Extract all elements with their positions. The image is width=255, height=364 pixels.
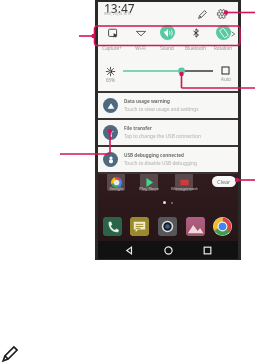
staticText: Google	[109, 186, 124, 192]
button[interactable]: Camera	[158, 217, 177, 236]
button[interactable]: Clear	[212, 176, 236, 187]
staticText: 65%	[106, 77, 115, 83]
button[interactable]: Home	[160, 242, 176, 258]
staticText: Tap to change the USB connection	[124, 133, 202, 140]
staticText: Management	[171, 186, 198, 192]
staticText: Touch to view usage and settings	[124, 106, 199, 113]
staticText: Capture+	[102, 45, 122, 51]
button[interactable]: Chrome	[213, 217, 232, 236]
button[interactable]: Rotation	[210, 25, 236, 51]
button[interactable]: Sound	[154, 25, 180, 51]
button[interactable]: File transfer	[98, 120, 238, 145]
button[interactable]: Settings	[215, 7, 229, 21]
staticText: Rotation	[214, 45, 232, 51]
button[interactable]: Wi-Fi	[127, 25, 153, 51]
button[interactable]: USB debugging connected	[98, 147, 238, 172]
staticText: File transfer	[124, 125, 152, 131]
button[interactable]: Play Store	[140, 173, 158, 191]
button[interactable]: Gallery	[186, 217, 205, 236]
button[interactable]: Google	[107, 173, 125, 191]
staticText: Bluetooth	[185, 45, 206, 51]
staticText: Wi-Fi	[135, 45, 146, 51]
button[interactable]: Data usage warning	[98, 93, 238, 118]
staticText: Touch to disable USB debugging	[124, 160, 198, 167]
staticText: Auto	[221, 76, 232, 82]
button[interactable]: Recents	[199, 242, 215, 258]
staticText: Data usage warning	[124, 98, 170, 104]
staticText: USB debugging connected	[124, 152, 185, 158]
staticText: Sound	[160, 45, 174, 51]
button[interactable]: Back	[121, 242, 137, 258]
button[interactable]: Edit	[196, 7, 210, 21]
staticText: WED, 20 JUL 2016	[104, 12, 131, 16]
button[interactable]: Auto brightness	[222, 67, 229, 74]
staticText: 13:47	[104, 0, 135, 16]
staticText: Clear	[217, 178, 231, 185]
button[interactable]: Capture+	[99, 25, 125, 51]
button[interactable]: Messages	[130, 217, 149, 236]
other: Edit	[2, 344, 20, 362]
button[interactable]: Bluetooth	[182, 25, 208, 51]
staticText: Play Store	[139, 186, 159, 192]
button[interactable]: Phone	[103, 217, 122, 236]
button[interactable]: Management	[175, 173, 193, 191]
